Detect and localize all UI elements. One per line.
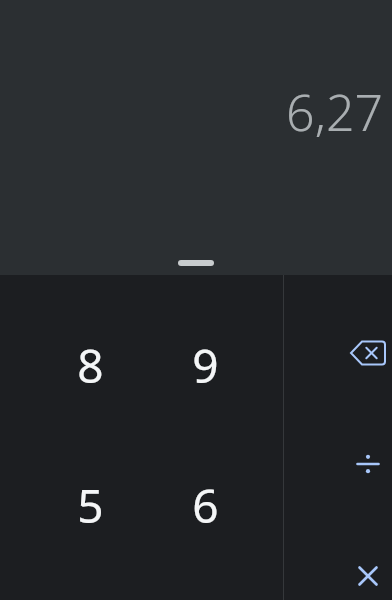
button[interactable]: 6,27 [0,0,392,275]
button[interactable]: 6 [151,439,259,571]
button[interactable]: 5 [36,439,144,571]
staticText: 5 [77,474,104,537]
button[interactable]: 8 [36,299,144,431]
staticText: 6 [192,474,219,537]
button[interactable]: Divide [320,416,392,512]
staticText: 6,27 [286,78,383,146]
button[interactable]: Multiply [320,528,392,600]
staticText: 9 [192,334,219,397]
staticText: 8 [77,334,104,397]
button[interactable]: Backspace [320,305,392,401]
button[interactable]: 9 [151,299,259,431]
